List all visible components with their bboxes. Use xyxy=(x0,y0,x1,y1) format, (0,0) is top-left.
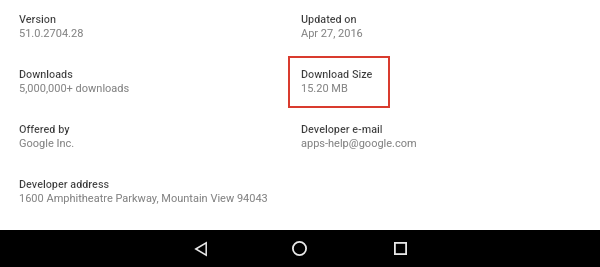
button[interactable]: Download Size xyxy=(297,61,577,105)
staticText: Apr 27, 2016 xyxy=(301,27,363,40)
staticText: Version xyxy=(19,13,56,26)
staticText: Developer e-mail xyxy=(301,123,383,136)
staticText: apps-help@google.com xyxy=(301,137,417,150)
staticText: Google Inc. xyxy=(19,137,75,150)
button[interactable]: Back xyxy=(181,230,220,267)
staticText: Download Size xyxy=(301,68,373,81)
staticText: Developer address xyxy=(19,178,110,191)
button[interactable]: Offered by xyxy=(15,116,285,160)
staticText: 5,000,000+ downloads xyxy=(19,82,130,95)
button[interactable]: Home xyxy=(280,230,319,267)
staticText: Updated on xyxy=(301,13,357,26)
button[interactable]: Downloads xyxy=(15,61,285,105)
button[interactable]: Developer e-mail xyxy=(297,116,577,160)
button[interactable]: Developer address xyxy=(15,171,285,215)
staticText: Downloads xyxy=(19,68,73,81)
staticText: 15.20 MB xyxy=(301,82,348,95)
button[interactable]: Recent apps xyxy=(381,230,420,267)
staticText: 51.0.2704.28 xyxy=(19,27,84,40)
button[interactable]: Version xyxy=(15,6,285,50)
staticText: 1600 Amphitheatre Parkway, Mountain View… xyxy=(19,192,268,205)
button[interactable]: Updated on xyxy=(297,6,577,50)
staticText: Offered by xyxy=(19,123,70,136)
